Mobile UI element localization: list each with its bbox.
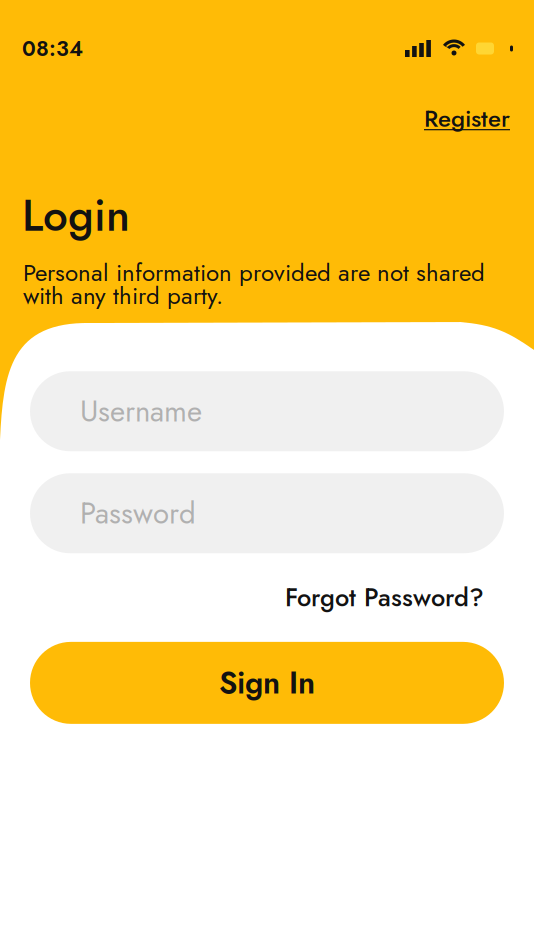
button[interactable]: Forgot Password? [0, 553, 534, 616]
button[interactable]: Register [424, 101, 510, 136]
staticText: Username [80, 390, 202, 432]
staticText: Sign In [219, 661, 315, 705]
staticText: Personal information provided are not sh… [23, 255, 485, 290]
staticText: Forgot Password? [285, 579, 484, 616]
button[interactable]: Sign In [30, 642, 504, 724]
staticText: Password [80, 492, 196, 534]
staticText: 08:34 [22, 33, 83, 64]
staticText: with any third party. [23, 278, 223, 313]
staticText: Register [424, 101, 510, 136]
staticText: Login [22, 184, 130, 247]
